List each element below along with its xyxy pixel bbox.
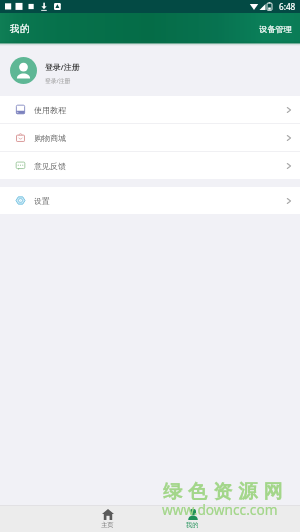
button[interactable]: 购物商城 bbox=[0, 124, 300, 151]
button[interactable]: 设置 bbox=[0, 187, 300, 214]
button[interactable]: 意见反馈 bbox=[0, 152, 300, 179]
staticText: 主页 bbox=[101, 521, 114, 529]
button[interactable]: 我的 bbox=[170, 505, 215, 532]
staticText: 我的 bbox=[10, 23, 30, 35]
staticText: 登录/注册 bbox=[45, 62, 80, 73]
button[interactable]: 我的 bbox=[10, 23, 30, 35]
staticText: 绿色资源网 bbox=[163, 480, 289, 504]
button[interactable]: 使用教程 bbox=[0, 96, 300, 123]
staticText: 6:48 bbox=[279, 1, 296, 12]
staticText: 设备管理 bbox=[259, 24, 292, 34]
button[interactable]: 登录/注册 bbox=[0, 44, 300, 96]
staticText: 登录/注册 bbox=[45, 77, 71, 85]
button[interactable]: 主页 bbox=[85, 505, 130, 532]
button[interactable]: 设备管理 bbox=[257, 21, 294, 37]
staticText: 意见反馈 bbox=[34, 161, 66, 171]
staticText: 我的 bbox=[186, 521, 199, 529]
staticText: 使用教程 bbox=[34, 105, 66, 115]
staticText: 设置 bbox=[34, 196, 50, 206]
staticText: 购物商城 bbox=[34, 133, 66, 143]
staticText: www.downcc.com bbox=[162, 500, 278, 519]
